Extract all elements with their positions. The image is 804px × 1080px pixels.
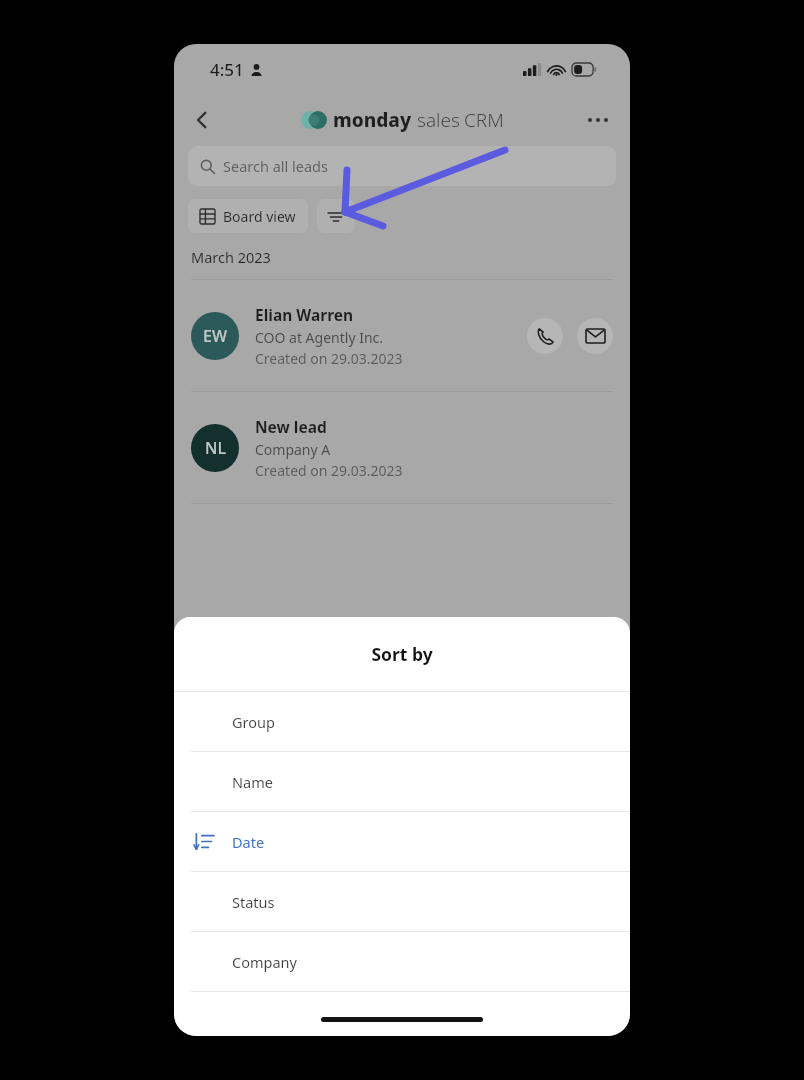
staticText: New lead: [255, 416, 327, 437]
staticText: NL: [205, 437, 226, 459]
staticText: Board view: [223, 207, 296, 226]
staticText: Sort by: [371, 642, 433, 666]
staticText: Date: [232, 832, 265, 852]
staticText: Status: [232, 892, 275, 912]
button[interactable]: Name: [174, 752, 630, 811]
staticText: Created on 29.03.2023: [255, 349, 403, 368]
button[interactable]: Search all leads: [188, 146, 616, 186]
staticText: EW: [203, 325, 227, 347]
staticText: Name: [232, 772, 273, 792]
button[interactable]: Group: [174, 692, 630, 751]
staticText: Elian Warren: [255, 304, 354, 325]
staticText: sales: [417, 107, 460, 133]
staticText: 4:51: [210, 58, 244, 81]
button[interactable]: Date: [174, 812, 630, 871]
staticText: CRM: [464, 107, 504, 133]
staticText: monday: [333, 107, 412, 133]
staticText: Group: [232, 712, 275, 732]
staticText: Company A: [255, 440, 331, 459]
button[interactable]: Call: [527, 318, 563, 354]
button[interactable]: EW: [174, 280, 630, 391]
button[interactable]: More options: [580, 102, 616, 138]
staticText: Company: [232, 952, 297, 972]
button[interactable]: NL: [174, 392, 630, 503]
button[interactable]: Email: [577, 318, 613, 354]
staticText: COO at Agently Inc.: [255, 328, 384, 347]
button[interactable]: Company: [174, 932, 630, 991]
button[interactable]: Board view: [188, 199, 308, 233]
button[interactable]: Back: [182, 100, 222, 140]
staticText: March 2023: [191, 247, 271, 267]
button[interactable]: Filter and sort: [317, 199, 355, 233]
staticText: Created on 29.03.2023: [255, 461, 403, 480]
staticText: Search all leads: [223, 156, 328, 176]
button[interactable]: Status: [174, 872, 630, 931]
